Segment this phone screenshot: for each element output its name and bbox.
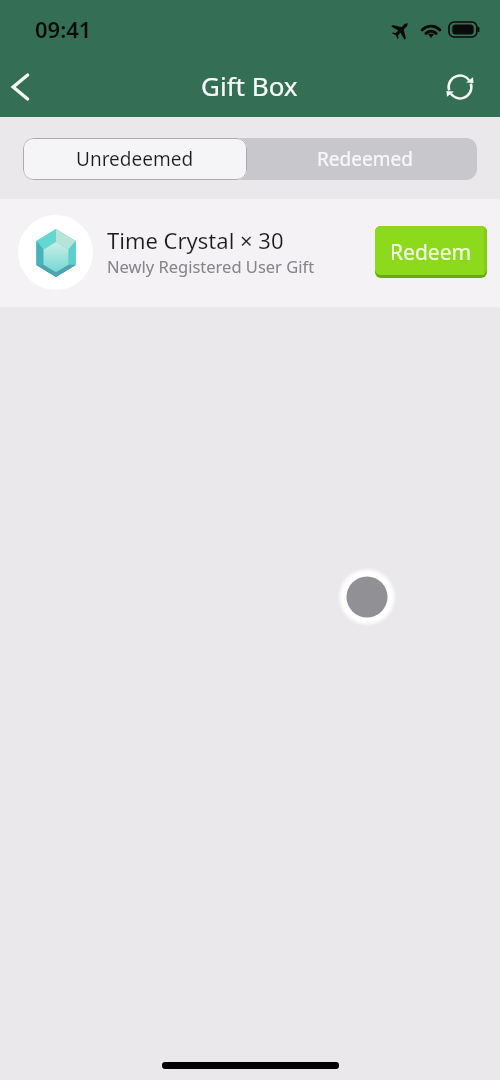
staticText: Redeem (390, 238, 472, 267)
staticText: Gift Box (201, 68, 298, 103)
staticText: Time Crystal × 30 (107, 225, 284, 255)
button[interactable]: Refresh (438, 65, 482, 109)
button[interactable]: Time Crystal × 30 (0, 199, 500, 307)
button[interactable]: Redeemed (247, 138, 477, 180)
button[interactable]: Back (0, 63, 44, 111)
button[interactable]: Unredeemed (23, 138, 247, 180)
staticText: Unredeemed (76, 146, 194, 172)
staticText: Newly Registered User Gift (107, 255, 315, 277)
staticText: 09:41 (35, 14, 92, 44)
button[interactable]: Redeem (375, 226, 487, 278)
staticText: Redeemed (317, 146, 413, 172)
